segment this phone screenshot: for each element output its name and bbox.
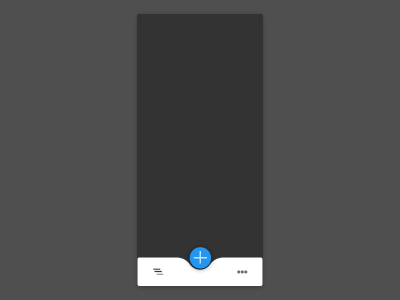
button[interactable]: Add xyxy=(190,247,211,269)
button[interactable]: Menu xyxy=(145,258,171,286)
button[interactable]: More options xyxy=(229,258,255,286)
